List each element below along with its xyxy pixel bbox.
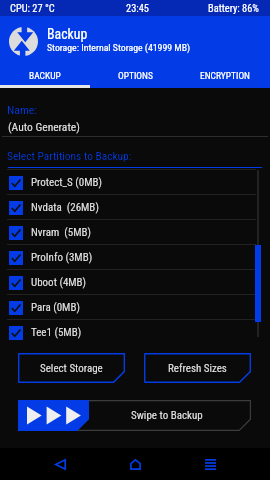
button[interactable]: Nvdata (26MB) [0,194,270,219]
staticText: Name: [7,103,38,117]
staticText: OPTIONS [118,70,153,81]
button[interactable]: Back [48,448,72,480]
staticText: ProInfo (3MB) [31,251,93,264]
button[interactable]: BACKUP [0,66,90,88]
staticText: Select Partitions to Backup: [7,149,132,162]
staticText: Uboot (4MB) [31,276,87,289]
staticText: Storage: Internal Storage (41999 MB) [47,42,191,53]
button[interactable]: ENCRYPTION [180,66,270,88]
staticText: BACKUP [29,70,61,81]
staticText: Select Storage [40,362,103,375]
button[interactable]: OPTIONS [90,66,180,88]
button[interactable]: Recent apps [198,448,222,480]
button[interactable]: Nvram (5MB) [0,219,270,244]
button[interactable]: Uboot (4MB) [0,269,270,294]
staticText: Tee1 (5MB) [31,326,82,339]
staticText: Swipe to Backup [131,409,203,422]
staticText: Backup [47,26,88,42]
staticText: ENCRYPTION [200,70,250,81]
button[interactable]: Select Storage [18,353,125,383]
staticText: CPU: 27 °C [10,2,55,14]
button[interactable]: Refresh Sizes [144,353,251,383]
staticText: Battery: 86% [208,2,259,14]
staticText: Nvram (5MB) [31,226,91,239]
staticText: 23:45 [126,2,149,14]
button[interactable]: Tee1 (5MB) [0,319,270,344]
button[interactable]: Protect_S (0MB) [0,169,270,194]
button[interactable]: Home [123,448,147,480]
button[interactable]: ProInfo (3MB) [0,244,270,269]
staticText: Protect_S (0MB) [31,176,102,189]
staticText: Para (0MB) [31,301,80,314]
staticText: Nvdata (26MB) [31,201,99,214]
staticText: (Auto Generate) [8,120,80,133]
button[interactable]: Swipe to Backup [18,400,251,431]
staticText: Refresh Sizes [168,362,227,375]
button[interactable]: Para (0MB) [0,294,270,319]
